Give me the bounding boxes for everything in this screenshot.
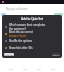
staticText: Save set xyxy=(4,53,14,56)
button[interactable]: Which answer best completes xyxy=(2,23,62,30)
staticText: My quiz collection xyxy=(6,7,28,11)
staticText: Add to Quiz Set xyxy=(2,17,62,21)
staticText: Cancel xyxy=(52,53,60,56)
staticText: Mark this as correct xyxy=(9,30,33,34)
button[interactable]: Tab xyxy=(50,66,56,72)
staticText: answer choice xyxy=(9,34,27,37)
button[interactable]: Cancel xyxy=(52,53,60,56)
button[interactable] xyxy=(1,13,6,16)
button[interactable]: Tab xyxy=(22,66,28,72)
staticText: the sentence? xyxy=(9,27,26,30)
button[interactable]: Tab xyxy=(36,66,42,72)
staticText: Shuffle the options xyxy=(9,39,33,43)
staticText: Show hint after 30s xyxy=(9,46,33,50)
button[interactable]: Show hint after 30s xyxy=(2,44,62,51)
button[interactable]: Shuffle the options xyxy=(2,37,62,44)
button[interactable] xyxy=(54,13,63,16)
staticText: Which answer best completes xyxy=(9,23,46,27)
button[interactable]: Tab xyxy=(8,66,14,72)
button[interactable]: Save set xyxy=(4,53,14,56)
button[interactable]: Mark this as correct xyxy=(2,30,62,37)
